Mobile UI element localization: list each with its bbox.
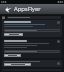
button[interactable]: In-app events	[2, 39, 62, 58]
staticText: AppsFlyer	[14, 5, 41, 13]
button[interactable]: Menu	[2, 16, 5, 19]
button[interactable]	[7, 16, 61, 19]
button[interactable]: Send event	[2, 60, 62, 67]
button[interactable]: Conversion data	[2, 20, 62, 37]
button[interactable]	[4, 33, 23, 36]
other: AppsFlyer logo	[5, 6, 12, 13]
button[interactable]	[4, 29, 60, 32]
button[interactable]	[4, 63, 31, 66]
button[interactable]	[4, 54, 21, 57]
button[interactable]: Conversion data	[57, 21, 60, 24]
button[interactable]	[4, 50, 60, 53]
button[interactable]: In-app events	[57, 40, 60, 43]
button[interactable]: Send event	[57, 62, 60, 65]
